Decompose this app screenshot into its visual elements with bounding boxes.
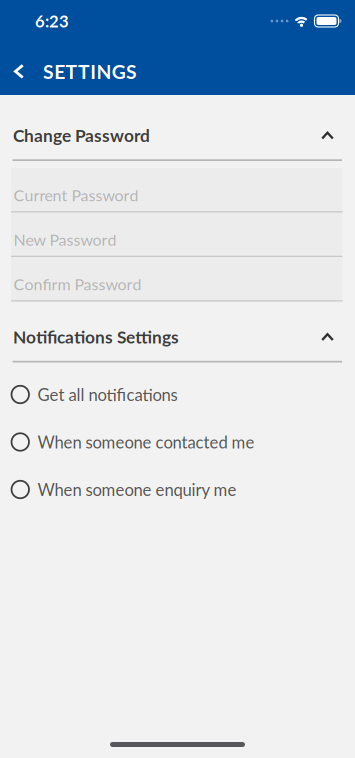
staticText: Confirm Password <box>13 274 141 294</box>
button[interactable]: Current Password <box>11 168 342 212</box>
button[interactable]: New Password <box>11 212 342 257</box>
button[interactable]: Back <box>13 64 24 79</box>
staticText: Get all notifications <box>37 384 177 404</box>
staticText: Change Password <box>13 125 150 146</box>
staticText: 6:23 <box>35 11 69 31</box>
staticText: Notifications Settings <box>13 326 179 347</box>
button[interactable]: When someone contacted me <box>0 432 355 452</box>
staticText: When someone enquiry me <box>37 479 236 499</box>
staticText: Current Password <box>13 185 138 205</box>
staticText: New Password <box>13 230 116 249</box>
staticText: SETTINGS <box>43 60 137 83</box>
button[interactable]: Notifications Settings <box>0 326 355 362</box>
button[interactable]: Confirm Password <box>11 257 342 301</box>
button[interactable]: Get all notifications <box>0 384 355 404</box>
button[interactable]: When someone enquiry me <box>0 479 355 499</box>
staticText: When someone contacted me <box>37 432 254 452</box>
button[interactable]: Change Password <box>0 125 355 161</box>
